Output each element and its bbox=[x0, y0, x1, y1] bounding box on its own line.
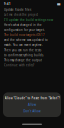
staticText: Continue with edits? bbox=[4, 63, 34, 67]
staticText: This may change the output bbox=[4, 58, 42, 62]
staticText: Here's what changed in the bbox=[4, 23, 42, 27]
staticText: Don't Allow bbox=[23, 109, 40, 113]
staticText: Then you can run the tests bbox=[4, 48, 41, 52]
staticText: to confirm everything builds. bbox=[4, 53, 44, 57]
button[interactable]: Don't Allow bbox=[3, 109, 61, 113]
staticText: configuration for your target. bbox=[4, 28, 45, 32]
staticText: Allow “Claude” to Paste from “Safari”? bbox=[4, 96, 59, 100]
button[interactable]: Allow bbox=[3, 103, 61, 106]
staticText: Allow bbox=[28, 103, 36, 106]
staticText: match. You can revert anytime. bbox=[4, 43, 43, 47]
staticText: Update Xcode files bbox=[4, 8, 31, 11]
staticText: 9:41 bbox=[4, 2, 11, 6]
staticText: and the scheme was updated to bbox=[4, 38, 48, 42]
staticText: ▮▮▮ bbox=[57, 2, 60, 5]
staticText: The build now targets iOS 17 bbox=[4, 33, 45, 37]
staticText: I'll update the build settings now bbox=[4, 18, 53, 22]
staticText: Let me check the project bbox=[4, 13, 38, 16]
